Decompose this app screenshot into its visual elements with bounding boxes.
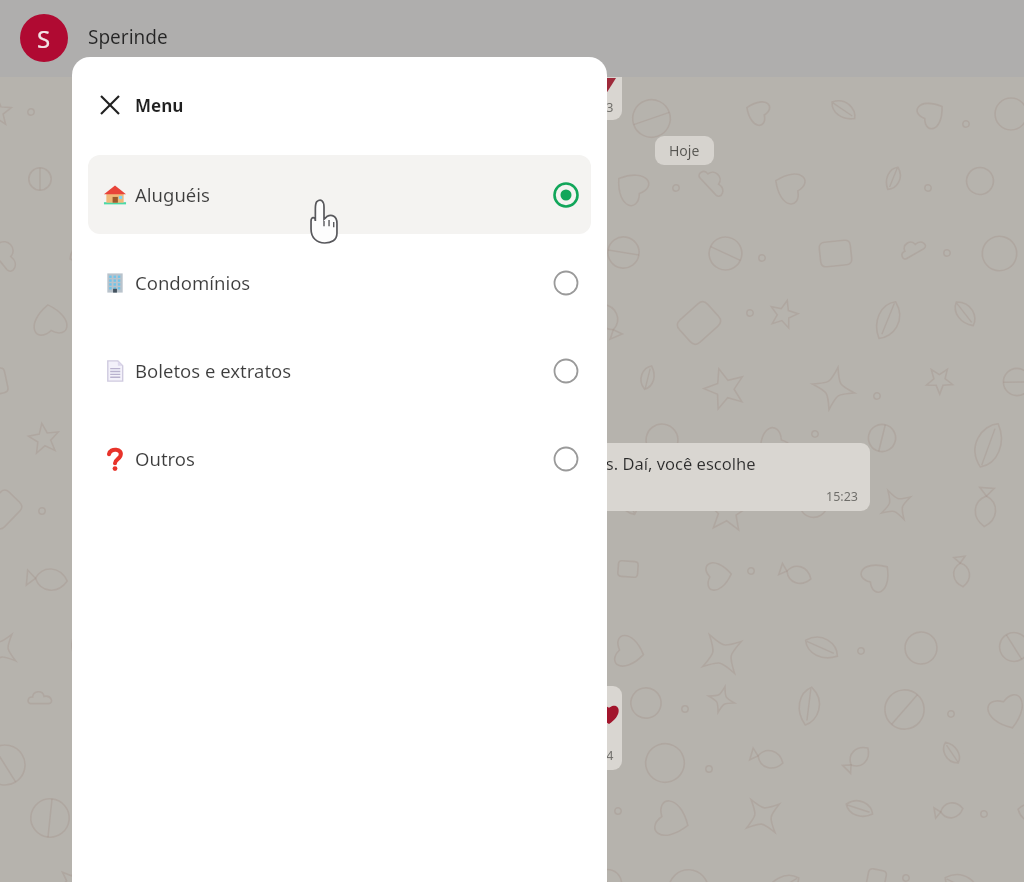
button[interactable]: Outros xyxy=(88,419,591,498)
staticText: Hoje xyxy=(669,141,700,160)
button[interactable]: Boletos e extratos xyxy=(88,331,591,410)
staticText: Boletos e extratos xyxy=(135,358,292,383)
staticText: Sperinde xyxy=(88,24,168,50)
staticText: Aluguéis xyxy=(135,182,210,207)
staticText: 13 xyxy=(599,99,614,116)
button[interactable]: Condomínios xyxy=(88,243,591,322)
staticText: Outros xyxy=(135,446,195,471)
other: Close menu xyxy=(99,94,121,116)
staticText: Condomínios xyxy=(135,270,251,295)
staticText: ente as opções. Daí, você escolhe xyxy=(498,452,756,474)
staticText: Menu xyxy=(135,94,184,117)
button[interactable]: Aluguéis xyxy=(88,155,591,234)
button[interactable]: Profile photo xyxy=(20,14,68,62)
staticText: 15:23 xyxy=(826,488,858,505)
button[interactable]: Close menu xyxy=(72,81,607,129)
staticText: 24 xyxy=(599,747,614,764)
staticText: S xyxy=(37,22,51,55)
